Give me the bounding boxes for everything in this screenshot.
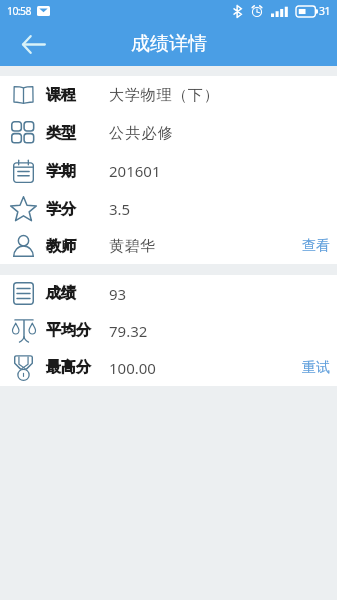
button[interactable]: 学分 [0,190,337,228]
staticText: 10:58 [7,4,31,18]
staticText: 31 [319,4,331,18]
staticText: 查看 [302,237,330,255]
staticText: 201601 [109,161,161,181]
staticText: 最高分 [46,358,91,377]
button[interactable]: 教师 [0,228,337,264]
staticText: 大学物理（下） [109,86,220,105]
staticText: 成绩详情 [131,32,207,56]
staticText: 黄碧华 [109,237,156,256]
button[interactable]: 课程 [0,76,337,114]
button[interactable]: 类型 [0,114,337,152]
staticText: 公共必修 [109,124,175,143]
staticText: 100.00 [109,358,156,378]
button[interactable]: Back [12,22,56,66]
staticText: 课程 [46,86,76,105]
staticText: 平均分 [46,321,91,340]
button[interactable]: 最高分 [0,349,337,386]
staticText: 学期 [46,162,76,181]
staticText: 教师 [46,237,76,256]
button[interactable]: 平均分 [0,312,337,349]
button[interactable]: 查看 [302,228,330,264]
staticText: 学分 [46,200,76,219]
staticText: 3.5 [109,199,131,219]
button[interactable]: 重试 [302,349,330,386]
staticText: 成绩 [46,284,76,303]
button[interactable]: 学期 [0,152,337,190]
staticText: 类型 [46,124,76,143]
button[interactable]: 成绩 [0,275,337,312]
staticText: 79.32 [109,321,148,341]
staticText: 93 [109,284,127,304]
staticText: 重试 [302,359,330,377]
